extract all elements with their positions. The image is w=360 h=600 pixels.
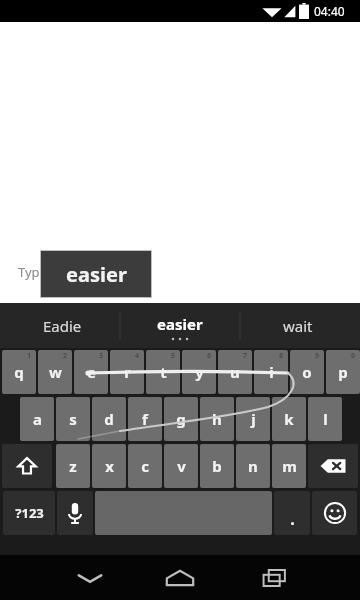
button[interactable]: r [110,350,144,394]
staticText: d [104,409,114,429]
staticText: h [212,409,222,429]
staticText: s [69,409,77,429]
button[interactable]: t [146,350,180,394]
button[interactable]: k [272,397,306,441]
staticText: 3 [99,351,104,361]
staticText: 1 [27,351,32,361]
button[interactable]: easier [40,250,152,298]
staticText: u [230,362,240,382]
button[interactable]: Home [130,555,230,600]
button[interactable]: Voice input [57,491,93,535]
staticText: q [14,362,24,382]
button[interactable]: u [218,350,252,394]
button[interactable]: n [236,444,270,488]
staticText: Eadie [43,316,82,336]
staticText: w [49,362,62,382]
staticText: f [142,409,148,429]
button[interactable]: Eadie [6,303,118,348]
staticText: 2 [63,351,68,361]
staticText: p [338,362,348,382]
button[interactable]: y [182,350,216,394]
staticText: e [87,362,96,382]
button[interactable]: a [20,397,54,441]
button[interactable]: m [272,444,306,488]
staticText: i [269,362,274,382]
button[interactable]: w [38,350,72,394]
button[interactable]: h [200,397,234,441]
staticText: g [176,409,186,429]
staticText: 7 [243,351,248,361]
staticText: c [141,456,149,476]
staticText: l [323,409,328,429]
button[interactable]: b [200,444,234,488]
staticText: 5 [171,351,176,361]
staticText: ?123 [15,504,44,522]
staticText: 04:40 [314,3,345,19]
staticText: a [33,409,42,429]
button[interactable]: d [92,397,126,441]
button[interactable]: q [2,350,36,394]
staticText: 8 [279,351,284,361]
button[interactable]: l [308,397,342,441]
staticText: 9 [315,351,320,361]
button[interactable]: o [290,350,324,394]
button[interactable]: z [56,444,90,488]
staticText: j [251,409,256,429]
button[interactable]: wait [242,303,354,348]
button[interactable]: j [236,397,270,441]
button[interactable]: p [326,350,360,394]
staticText: wait [283,316,313,336]
button[interactable]: Period [274,491,310,535]
staticText: 4 [135,351,140,361]
button[interactable]: g [164,397,198,441]
staticText: Typing [18,263,59,281]
button[interactable]: f [128,397,162,441]
staticText: v [177,456,186,476]
staticText: t [160,362,167,382]
button[interactable]: Symbols [3,491,55,535]
staticText: 0 [351,351,356,361]
staticText: . [290,508,295,530]
button[interactable]: s [56,397,90,441]
button[interactable]: Recent apps [225,555,325,600]
button[interactable]: c [128,444,162,488]
button[interactable]: easier [124,303,236,348]
button[interactable]: Emoji [312,491,357,535]
button[interactable]: x [92,444,126,488]
staticText: m [282,456,297,476]
button[interactable]: Backspace [308,444,358,488]
staticText: easier [66,261,127,288]
button[interactable]: i [254,350,288,394]
staticText: y [195,362,204,382]
staticText: k [284,409,294,429]
staticText: r [124,362,131,382]
staticText: easier [157,314,203,334]
staticText: 6 [207,351,212,361]
button[interactable]: Shift [2,444,52,488]
staticText: o [302,362,312,382]
button[interactable]: v [164,444,198,488]
button[interactable]: e [74,350,108,394]
staticText: n [248,456,258,476]
staticText: x [105,456,114,476]
button[interactable]: Hide keyboard [40,555,140,600]
staticText: b [212,456,222,476]
staticText: z [69,456,77,476]
